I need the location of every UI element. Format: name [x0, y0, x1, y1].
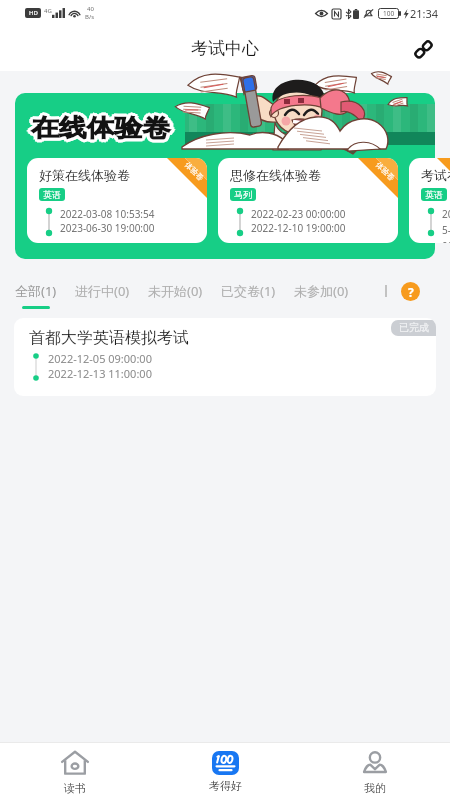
staticText: 在线体验卷: [29, 113, 168, 143]
staticText: 在线体验卷: [31, 112, 170, 142]
staticText: 在线体验卷: [32, 112, 171, 142]
staticText: 考试在线体验卷: [421, 167, 450, 183]
staticText: 在线体验卷: [30, 112, 169, 142]
staticText: 体验卷: [374, 160, 397, 183]
staticText: 读书: [64, 781, 86, 795]
staticText: 在线体验卷: [30, 114, 169, 144]
staticText: 2023-06-30 19:00:00: [60, 221, 155, 235]
staticText: 已交卷(1): [221, 282, 276, 300]
button[interactable]: 全部(1): [6, 272, 66, 309]
staticText: 马列: [234, 189, 252, 200]
staticText: 2022-02-23 00:00:00: [251, 207, 346, 221]
staticText: 考得好: [209, 779, 242, 793]
staticText: 我的: [364, 781, 386, 795]
staticText: 已完成: [399, 321, 429, 334]
staticText: 2022-05-01 00:00:00: [442, 207, 450, 243]
staticText: 进行中(0): [75, 282, 130, 300]
button[interactable]: 进行中(0): [66, 272, 139, 309]
staticText: 在线体验卷: [32, 111, 171, 141]
staticText: 在线体验卷: [32, 115, 171, 145]
staticText: 全部(1): [15, 282, 57, 300]
staticText: 21:34: [410, 6, 439, 21]
staticText: 在线体验卷: [31, 113, 170, 143]
staticText: 在线体验卷: [30, 115, 169, 145]
staticText: 好策在线体验卷: [39, 167, 130, 183]
button[interactable]: 已交卷(1): [212, 272, 285, 309]
staticText: 在线体验卷: [29, 112, 168, 142]
button[interactable]: 未参加(0): [285, 272, 358, 309]
staticText: 在线体验卷: [29, 114, 168, 144]
staticText: 在线体验卷: [33, 113, 172, 143]
staticText: 在线体验卷: [30, 113, 169, 143]
staticText: 在线体验卷: [32, 113, 171, 143]
staticText: 在线体验卷: [31, 110, 170, 140]
button[interactable]: 读书: [0, 743, 150, 800]
staticText: 思修在线体验卷: [230, 167, 321, 183]
staticText: 在线体验卷: [27, 113, 167, 143]
staticText: 在线体验卷: [33, 111, 172, 141]
staticText: 在线体验卷: [31, 115, 170, 145]
button[interactable]: 我的: [300, 743, 450, 800]
staticText: 考试中心: [191, 38, 259, 59]
staticText: 2022-12-13 11:00:00: [48, 366, 152, 381]
staticText: ?: [408, 284, 414, 300]
staticText: 在线体验卷: [31, 111, 170, 141]
staticText: 在线体验卷: [33, 115, 172, 145]
staticText: 40: [87, 5, 94, 13]
button[interactable]: Share link: [406, 32, 440, 66]
staticText: 2022-03-08 10:53:54: [60, 207, 155, 221]
staticText: 在线体验卷: [30, 111, 169, 141]
staticText: 在线体验卷: [32, 114, 171, 144]
staticText: 4G: [44, 7, 52, 15]
staticText: 英语: [425, 189, 443, 200]
staticText: 在线体验卷: [31, 114, 170, 144]
staticText: 未参加(0): [294, 282, 349, 300]
button[interactable]: 考得好: [150, 743, 300, 800]
staticText: 在线体验卷: [34, 113, 174, 143]
staticText: 100: [383, 9, 395, 18]
button[interactable]: Help: [401, 282, 420, 301]
staticText: 在线体验卷: [31, 116, 170, 146]
staticText: 在线体验卷: [33, 112, 172, 142]
button[interactable]: 体验卷: [409, 158, 450, 243]
staticText: 英语: [43, 189, 61, 200]
staticText: 在线体验卷: [29, 111, 168, 141]
staticText: 未开始(0): [148, 282, 203, 300]
staticText: 体验卷: [183, 160, 206, 183]
button[interactable]: 首都大学英语模拟考试: [14, 318, 436, 396]
staticText: 在线体验卷: [33, 114, 172, 144]
button[interactable]: 体验卷: [27, 158, 207, 243]
button[interactable]: 体验卷: [218, 158, 398, 243]
staticText: 2022-12-05 09:00:00: [48, 351, 152, 366]
staticText: 首都大学英语模拟考试: [29, 328, 189, 348]
staticText: B/s: [85, 13, 95, 21]
staticText: 2022-12-10 19:00:00: [251, 221, 346, 235]
button[interactable]: 未开始(0): [139, 272, 212, 309]
staticText: 在线体验卷: [29, 115, 168, 145]
staticText: HD: [29, 9, 38, 17]
